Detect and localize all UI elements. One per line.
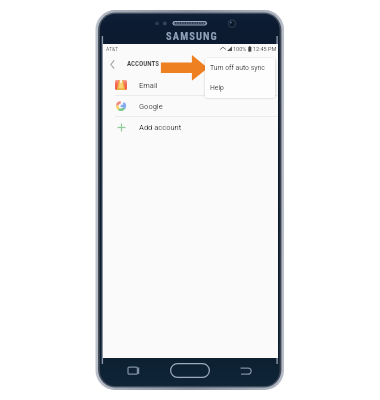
staticText: Email [139,81,158,90]
staticText: Google [139,102,163,111]
button[interactable]: Help [205,78,275,98]
button[interactable]: Recent apps [126,365,142,377]
staticText: 100% [233,46,247,52]
button[interactable]: Add account [103,117,278,137]
button[interactable]: Home [170,363,210,378]
staticText: Help [210,84,224,92]
staticText: 12:45 PM [253,46,277,52]
staticText: ACCOUNTS [127,60,160,68]
staticText: AT&T [106,46,119,52]
staticText: Turn off auto sync [210,64,265,72]
button[interactable]: Back [239,365,255,377]
button[interactable]: Google [103,96,278,116]
button[interactable]: Turn off auto sync [205,58,275,78]
staticText: SAMSUNG [166,30,218,42]
button[interactable]: Navigate up [103,53,122,75]
staticText: Add account [139,123,182,132]
button[interactable]: Email [103,75,278,95]
